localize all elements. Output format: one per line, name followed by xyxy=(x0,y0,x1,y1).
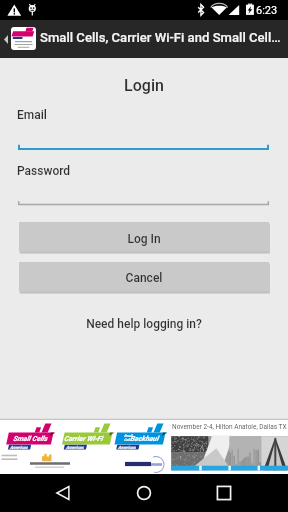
button[interactable]: Back xyxy=(39,474,87,512)
staticText: 6:23 xyxy=(256,4,278,17)
staticText: Email xyxy=(17,108,47,122)
staticText: Small Cells xyxy=(13,435,48,443)
staticText: Login xyxy=(0,76,288,95)
staticText: Backhaul xyxy=(130,435,159,443)
staticText: Small Cell xyxy=(124,434,133,442)
button[interactable] xyxy=(19,222,269,253)
button[interactable]: Advertisement banner xyxy=(0,420,288,474)
staticText: Cancel xyxy=(19,271,269,285)
button[interactable]: Home xyxy=(120,474,168,512)
staticText: Americas xyxy=(118,445,136,450)
button[interactable] xyxy=(19,262,269,293)
button[interactable]: Need help logging in? xyxy=(0,317,288,331)
button[interactable]: Recent apps xyxy=(200,474,248,512)
staticText: Small Cells, Carrier Wi-Fi and Small Cel… xyxy=(40,30,281,45)
staticText: Log In xyxy=(19,232,269,246)
staticText: November 2-4, Hilton Anatole, Dallas TX xyxy=(172,423,288,431)
staticText: Password xyxy=(17,164,71,178)
staticText: Americas xyxy=(10,445,28,450)
button[interactable]: Navigate up xyxy=(0,20,38,58)
staticText: Americas xyxy=(66,445,84,450)
staticText: Carrier Wi-Fi xyxy=(64,435,103,443)
